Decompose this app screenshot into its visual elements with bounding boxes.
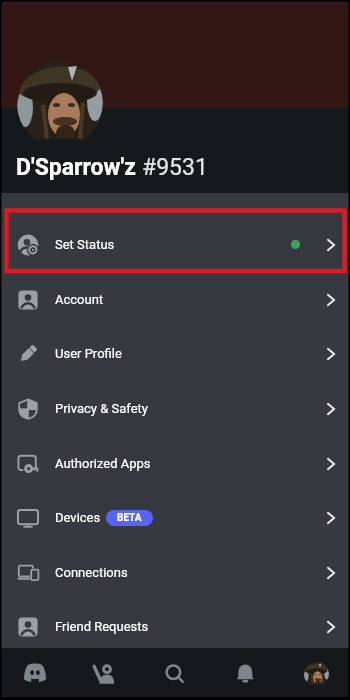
button[interactable]: Set Status — [0, 217, 350, 272]
button[interactable]: Devices — [0, 490, 350, 545]
staticText: Friend Requests — [55, 619, 149, 634]
button[interactable]: Connections — [0, 545, 350, 600]
staticText: Connections — [55, 565, 128, 580]
staticText: D'Sparrow'z — [16, 154, 136, 181]
button[interactable]: Account — [0, 272, 350, 327]
staticText: Devices — [55, 510, 101, 525]
button[interactable]: Privacy & Safety — [0, 381, 350, 436]
staticText: Authorized Apps — [55, 456, 151, 471]
staticText: BETA — [117, 512, 142, 524]
button[interactable]: Authorized Apps — [0, 436, 350, 491]
button[interactable]: You — [280, 648, 350, 700]
button[interactable]: Friend Requests — [0, 599, 350, 648]
staticText: #9531 — [142, 154, 208, 181]
staticText: User Profile — [55, 346, 122, 361]
button[interactable]: Notifications — [210, 648, 280, 700]
button[interactable]: Profile picture — [17, 61, 103, 147]
button[interactable]: Home — [0, 648, 70, 700]
button[interactable]: Friends — [70, 648, 140, 700]
staticText: Account — [55, 292, 104, 307]
staticText: Set Status — [55, 237, 115, 252]
staticText: Privacy & Safety — [55, 401, 148, 416]
button[interactable]: Search — [140, 648, 210, 700]
button[interactable]: User Profile — [0, 326, 350, 381]
